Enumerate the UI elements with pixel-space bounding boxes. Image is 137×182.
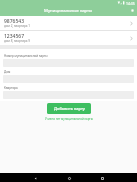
staticText: дом 8, квартира 9 (4, 39, 30, 43)
staticText: У меня нет муниципальной карты (45, 117, 93, 121)
button[interactable]: У меня нет муниципальной карты (43, 116, 95, 122)
button[interactable]: 9876543 (0, 16, 137, 30)
staticText: Дом (4, 70, 11, 74)
staticText: 9876543 (4, 18, 25, 25)
button[interactable]: More options (128, 6, 136, 14)
staticText: 14:35 (126, 1, 135, 6)
button[interactable]: Recents (98, 174, 106, 182)
staticText: Квартира (4, 86, 18, 90)
staticText: Муниципальные карты (44, 7, 93, 13)
staticText: Номер муниципальной карты (4, 54, 48, 58)
staticText: Добавить карту (54, 106, 85, 111)
staticText: дом 2, квартира 1 (4, 24, 30, 28)
staticText: 1234567 (4, 33, 25, 40)
button[interactable]: 1234567 (0, 31, 137, 45)
button[interactable]: Back (31, 174, 39, 182)
button[interactable]: Home (65, 174, 73, 182)
button[interactable]: Добавить карту (47, 103, 91, 114)
